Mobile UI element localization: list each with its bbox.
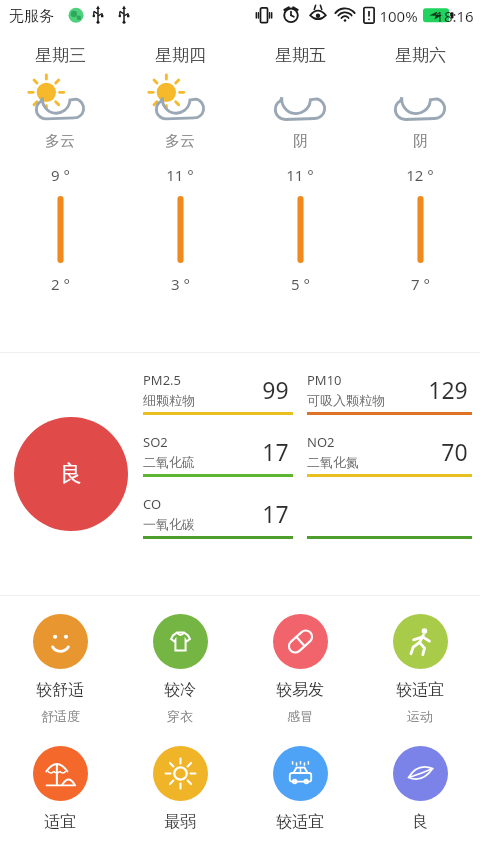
staticText: NO2 <box>307 433 335 451</box>
staticText: 细颗粒物 <box>143 392 195 408</box>
staticText: SO2 <box>143 433 168 451</box>
staticText: 多云 <box>165 132 195 151</box>
staticText: PM2.5 <box>143 371 182 389</box>
button[interactable]: 适宜 <box>0 746 120 832</box>
staticText: 星期六 <box>395 45 446 66</box>
staticText: 星期四 <box>155 45 206 66</box>
staticText: 良 <box>60 460 82 488</box>
staticText: 较易发 <box>276 680 324 700</box>
button[interactable]: 良 <box>14 417 128 531</box>
staticText: 适宜 <box>44 812 76 832</box>
staticText: 17 <box>262 436 289 467</box>
button[interactable]: 较冷穿衣 <box>120 614 240 724</box>
button[interactable]: 星期六 <box>360 34 480 294</box>
button[interactable]: PM2.5 <box>143 369 293 415</box>
staticText: 18:16 <box>435 6 474 26</box>
staticText: 星期三 <box>35 45 86 66</box>
staticText: 11 ° <box>166 165 194 185</box>
staticText: 2 ° <box>51 274 70 294</box>
button[interactable]: 最弱 <box>120 746 240 832</box>
staticText: 100% <box>379 6 418 26</box>
staticText: 129 <box>428 374 468 405</box>
button[interactable]: CO <box>143 493 293 539</box>
button[interactable]: 星期四 <box>120 34 240 294</box>
staticText: 无服务 <box>9 7 54 26</box>
button[interactable]: SO2 <box>143 431 293 477</box>
staticText: 5 ° <box>291 274 310 294</box>
button[interactable]: 较适宜运动 <box>360 614 480 724</box>
staticText: 运动 <box>407 708 433 724</box>
staticText: 最弱 <box>164 812 196 832</box>
staticText: 舒适度 <box>41 708 80 724</box>
button[interactable]: 星期五 <box>240 34 360 294</box>
staticText: 较适宜 <box>276 812 324 832</box>
button[interactable]: 星期三 <box>0 34 120 294</box>
staticText: 17 <box>262 498 289 529</box>
button[interactable]: 较适宜 <box>240 746 360 832</box>
staticText: 较适宜 <box>396 680 444 700</box>
staticText: 一氧化碳 <box>143 516 195 532</box>
staticText: PM10 <box>307 371 342 389</box>
staticText: 3 ° <box>171 274 190 294</box>
staticText: 较冷 <box>164 680 196 700</box>
staticText: 多云 <box>45 132 75 151</box>
staticText: 二氧化氮 <box>307 454 359 470</box>
button[interactable]: NO2 <box>307 431 472 477</box>
staticText: 9 ° <box>51 165 70 185</box>
staticText: CO <box>143 495 162 513</box>
staticText: 较舒适 <box>36 680 84 700</box>
button[interactable]: 较舒适舒适度 <box>0 614 120 724</box>
staticText: 11 ° <box>286 165 314 185</box>
button[interactable]: 较易发感冒 <box>240 614 360 724</box>
button[interactable]: PM10 <box>307 369 472 415</box>
staticText: 穿衣 <box>167 708 193 724</box>
staticText: 7 ° <box>411 274 430 294</box>
staticText: 12 ° <box>406 165 434 185</box>
staticText: 70 <box>441 436 468 467</box>
staticText: 可吸入颗粒物 <box>307 392 385 408</box>
staticText: 99 <box>262 374 289 405</box>
staticText: 感冒 <box>287 708 313 724</box>
button[interactable]: 良 <box>360 746 480 832</box>
staticText: 星期五 <box>275 45 326 66</box>
staticText: 二氧化硫 <box>143 454 195 470</box>
staticText: 阴 <box>293 132 308 151</box>
staticText: 良 <box>412 812 428 832</box>
staticText: 阴 <box>413 132 428 151</box>
